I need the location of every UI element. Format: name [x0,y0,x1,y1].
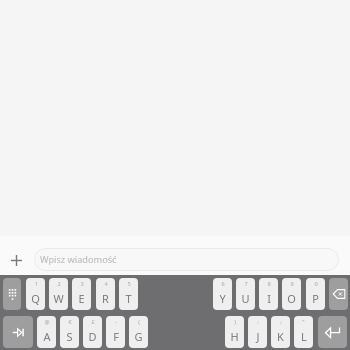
staticText: T [125,291,132,306]
staticText: H [230,329,239,344]
button[interactable]: 1 [26,278,45,310]
button[interactable]: Add attachment [4,248,29,273]
button[interactable]: 3 [72,278,91,310]
button[interactable]: 7 [236,278,255,310]
staticText: 3 [80,280,84,288]
button[interactable]: £ [83,316,102,348]
staticText: ( [138,318,140,326]
staticText: 6 [221,280,225,288]
staticText: 1 [34,280,38,288]
button[interactable]: 2 [49,278,68,310]
button[interactable]: Tab [3,316,33,348]
staticText: I [267,291,271,306]
button[interactable]: ( [129,316,148,348]
staticText: @ [44,318,50,326]
staticText: 4 [104,280,108,288]
staticText: E [78,291,85,306]
staticText: - [115,318,117,326]
button[interactable]: € [60,316,79,348]
staticText: Y [219,291,226,306]
staticText: £ [91,318,95,326]
staticText: W [53,291,64,306]
button[interactable]: 4 [96,278,115,310]
staticText: ; [280,318,282,326]
staticText: G [134,329,143,344]
button[interactable]: Enter [318,316,347,348]
button[interactable]: : [248,316,267,348]
button[interactable]: 6 [213,278,232,310]
staticText: L [301,329,307,344]
button[interactable]: Backspace [329,278,348,310]
staticText: K [277,329,284,344]
button[interactable]: 5 [119,278,138,310]
staticText: 9 [290,280,294,288]
staticText: ) [234,318,236,326]
button[interactable]: 8 [259,278,278,310]
staticText: € [68,318,72,326]
staticText: 2 [57,280,61,288]
button[interactable]: ; [271,316,290,348]
button[interactable]: Numeric keypad [3,278,21,310]
button[interactable]: 9 [282,278,301,310]
staticText: S [66,329,73,344]
button[interactable]: " [294,316,313,348]
staticText: A [43,329,51,344]
staticText: " [302,318,305,326]
staticText: Wpisz wiadomość [40,253,117,266]
staticText: 8 [267,280,271,288]
staticText: F [113,329,119,344]
button[interactable]: @ [37,316,56,348]
staticText: R [102,291,109,306]
staticText: O [287,291,296,306]
staticText: : [257,318,259,326]
staticText: U [241,291,250,306]
button[interactable]: Wpisz wiadomość [34,248,339,271]
button[interactable]: - [106,316,125,348]
button[interactable]: ) [225,316,244,348]
staticText: P [312,291,319,306]
staticText: 5 [127,280,131,288]
staticText: 0 [314,280,318,288]
staticText: 7 [244,280,248,288]
staticText: J [256,329,260,344]
button[interactable]: 0 [306,278,325,310]
staticText: D [88,329,97,344]
staticText: Q [31,291,40,306]
